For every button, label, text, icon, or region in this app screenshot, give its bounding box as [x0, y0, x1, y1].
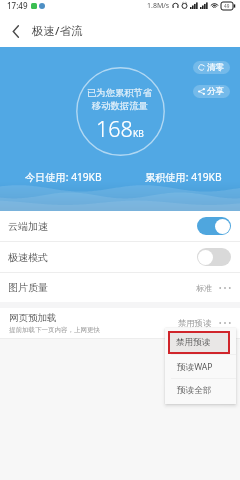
button[interactable]: 图片质量	[0, 273, 240, 302]
staticText: 1.8M/s	[147, 1, 170, 11]
button[interactable]: 网页预加载	[0, 308, 240, 338]
staticText: 49	[224, 3, 230, 9]
staticText: KB	[133, 128, 144, 140]
button[interactable]: 关	[197, 248, 231, 266]
staticText: 预读全部	[177, 385, 212, 396]
button[interactable]: 分享	[193, 85, 230, 98]
other: 更多	[219, 286, 231, 290]
button[interactable]: 清零	[193, 61, 230, 74]
button[interactable]: 极速模式	[0, 242, 240, 272]
staticText: 累积使用: 419KB	[145, 170, 222, 184]
staticText: 极速/省流	[32, 23, 83, 39]
staticText: 17:49	[7, 0, 28, 11]
button[interactable]: 开	[197, 217, 231, 235]
button[interactable]: 预读全部	[165, 379, 236, 402]
button[interactable]: 云端加速	[0, 211, 240, 241]
staticText: 今日使用: 419KB	[25, 170, 102, 184]
staticText: 分享	[207, 86, 224, 97]
staticText: 云端加速	[8, 220, 48, 233]
staticText: 图片质量	[8, 281, 48, 294]
staticText: 标准	[196, 283, 212, 293]
other: 更多	[219, 321, 231, 325]
button[interactable]: 返回	[0, 15, 32, 47]
staticText: 禁用预读	[178, 318, 212, 328]
button[interactable]: 禁用预读	[168, 331, 230, 354]
staticText: 已为您累积节省	[87, 87, 153, 99]
staticText: 极速模式	[8, 251, 48, 264]
staticText: 168	[96, 114, 133, 143]
staticText: 预读WAP	[177, 361, 213, 373]
staticText: 提前加载下一页内容，上网更快	[9, 326, 100, 334]
staticText: 禁用预读	[176, 337, 211, 348]
button[interactable]: 预读WAP	[165, 355, 236, 378]
staticText: 网页预加载	[9, 312, 57, 324]
staticText: 移动数据流量	[92, 100, 148, 112]
staticText: 清零	[207, 62, 224, 73]
